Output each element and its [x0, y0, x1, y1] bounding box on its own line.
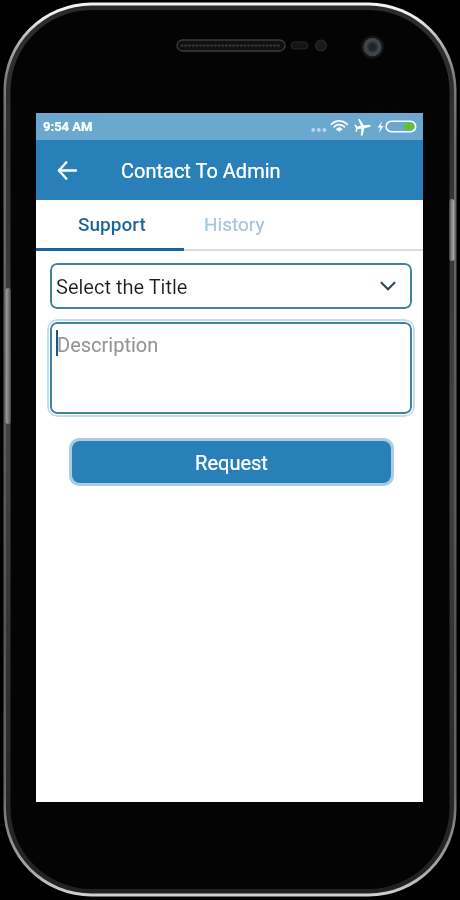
- button[interactable]: Select the Title: [50, 263, 412, 309]
- staticText: Select the Title: [56, 275, 188, 298]
- staticText: History: [204, 213, 265, 235]
- staticText: Support: [78, 213, 146, 235]
- staticText: 9:54 AM: [43, 119, 93, 134]
- staticText: Description: [57, 333, 159, 356]
- staticText: Contact To Admin: [121, 159, 281, 182]
- button[interactable]: History: [186, 200, 282, 248]
- button[interactable]: Request: [72, 441, 391, 483]
- button[interactable]: Support: [37, 200, 186, 248]
- button[interactable]: Back: [45, 148, 89, 192]
- button[interactable]: Description: [50, 322, 412, 414]
- staticText: Request: [195, 451, 268, 474]
